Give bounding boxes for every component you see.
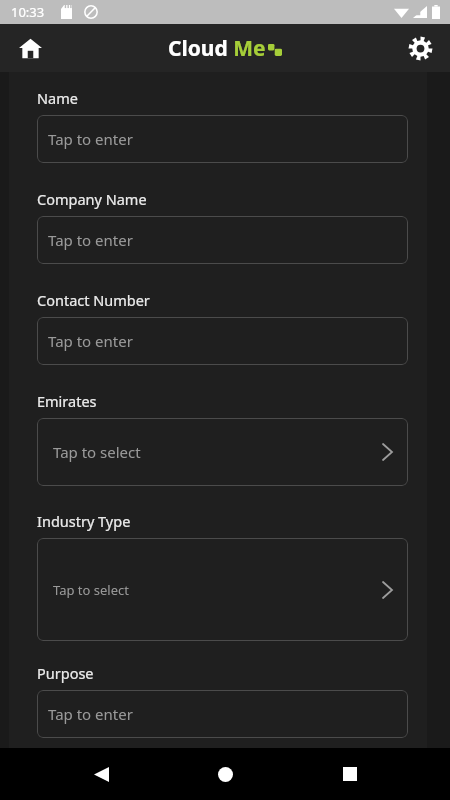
button[interactable]: Settings bbox=[398, 26, 442, 70]
staticText: Cloud Me bbox=[168, 34, 266, 63]
button[interactable]: Tap to select bbox=[37, 418, 408, 486]
button[interactable]: Tap to select bbox=[37, 538, 408, 641]
button[interactable]: Home bbox=[8, 26, 52, 70]
staticText: Tap to enter bbox=[48, 331, 133, 351]
staticText: 10:33 bbox=[11, 3, 45, 21]
staticText: Company Name bbox=[37, 189, 147, 209]
staticText: Contact Number bbox=[37, 290, 150, 310]
button[interactable]: Tap to enter bbox=[37, 690, 408, 738]
staticText: Emirates bbox=[37, 391, 97, 411]
button[interactable]: Home bbox=[201, 750, 249, 798]
button[interactable]: Tap to enter bbox=[37, 115, 408, 163]
staticText: Tap to enter bbox=[48, 704, 133, 724]
staticText: Purpose bbox=[37, 663, 94, 683]
staticText: Tap to select bbox=[53, 581, 129, 599]
staticText: Tap to enter bbox=[48, 230, 133, 250]
button[interactable]: Tap to enter bbox=[37, 216, 408, 264]
button[interactable]: Recent apps bbox=[326, 750, 374, 798]
button[interactable]: Back bbox=[77, 750, 125, 798]
staticText: Tap to select bbox=[53, 442, 141, 462]
button[interactable]: Tap to enter bbox=[37, 317, 408, 365]
staticText: Name bbox=[37, 88, 78, 108]
staticText: Tap to enter bbox=[48, 129, 133, 149]
staticText: Industry Type bbox=[37, 511, 131, 531]
